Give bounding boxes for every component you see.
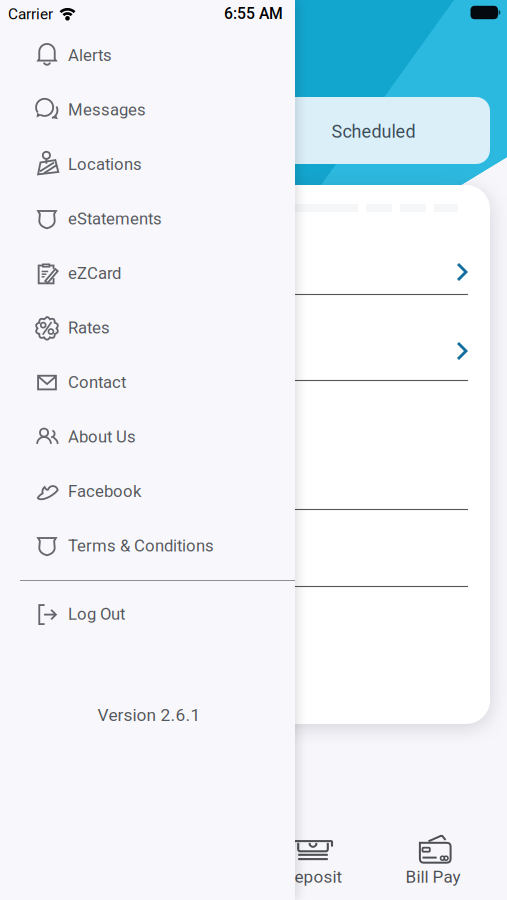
- button[interactable]: eZCard: [0, 246, 285, 300]
- button[interactable]: Rates: [0, 300, 285, 355]
- staticText: Version 2.6.1: [97, 705, 200, 725]
- button[interactable]: Scheduled: [17, 97, 490, 164]
- button[interactable]: Terms & Conditions: [0, 518, 285, 573]
- button[interactable]: Facebook: [0, 464, 285, 518]
- staticText: Locations: [68, 154, 142, 174]
- button[interactable]: Deposit: [257, 830, 369, 890]
- button[interactable]: Select account: [17, 294, 490, 380]
- staticText: eStatements: [68, 209, 162, 228]
- staticText: Deposit: [283, 867, 342, 887]
- staticText: Rates: [68, 318, 110, 337]
- button[interactable]: Messages: [0, 82, 285, 137]
- button[interactable]: Alerts: [0, 28, 285, 82]
- button[interactable]: Select account: [17, 186, 490, 294]
- staticText: Carrier: [8, 5, 53, 23]
- staticText: Facebook: [68, 481, 141, 501]
- staticText: Contact: [68, 372, 126, 392]
- staticText: Scheduled: [331, 121, 415, 142]
- staticText: eZCard: [68, 263, 121, 283]
- staticText: Alerts: [68, 45, 112, 65]
- staticText: Messages: [68, 100, 146, 119]
- button[interactable]: Contact: [0, 355, 285, 409]
- button[interactable]: eStatements: [0, 191, 285, 246]
- button[interactable]: Locations: [0, 137, 285, 191]
- button[interactable]: Log Out: [0, 587, 285, 641]
- staticText: Terms & Conditions: [68, 536, 214, 555]
- staticText: Bill Pay: [405, 867, 460, 887]
- staticText: 6:55 AM: [224, 4, 283, 23]
- button[interactable]: Bill Pay: [377, 830, 489, 890]
- button[interactable]: About Us: [0, 409, 285, 464]
- staticText: About Us: [68, 427, 136, 446]
- staticText: Log Out: [68, 604, 125, 624]
